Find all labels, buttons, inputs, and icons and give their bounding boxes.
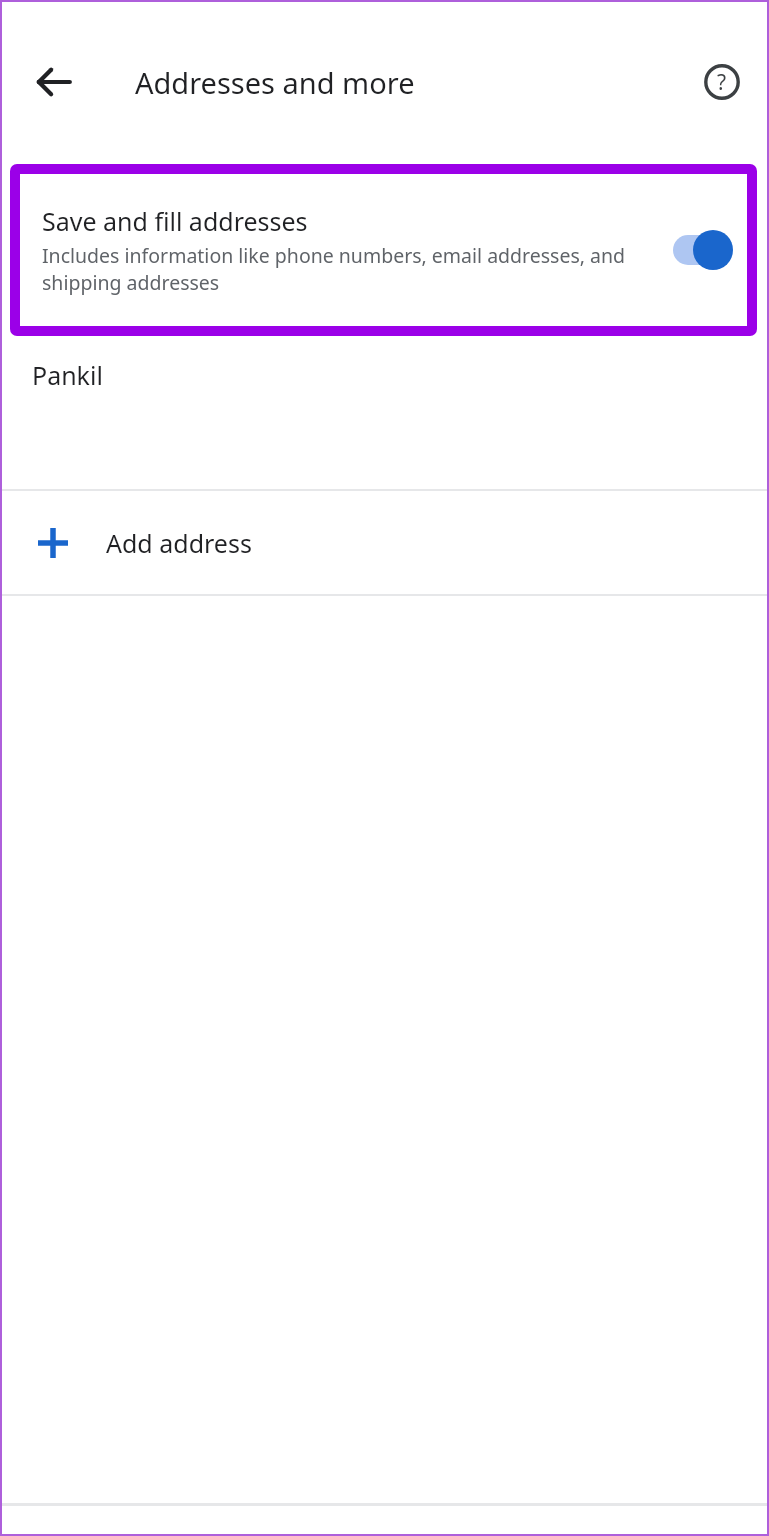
staticText: Add address [106, 526, 252, 560]
staticText: Addresses and more [135, 63, 415, 102]
staticText: Save and fill addresses [42, 204, 308, 238]
button[interactable]: Save and fill addresses [20, 174, 747, 326]
button[interactable]: Add address [0, 491, 769, 594]
button[interactable]: Help [693, 53, 751, 111]
button[interactable]: Back [22, 50, 86, 114]
staticText: Includes information like phone numbers,… [42, 242, 627, 296]
staticText: Pankil [32, 358, 103, 392]
button[interactable]: Pankil [0, 338, 769, 489]
staticText: ? [717, 68, 727, 97]
